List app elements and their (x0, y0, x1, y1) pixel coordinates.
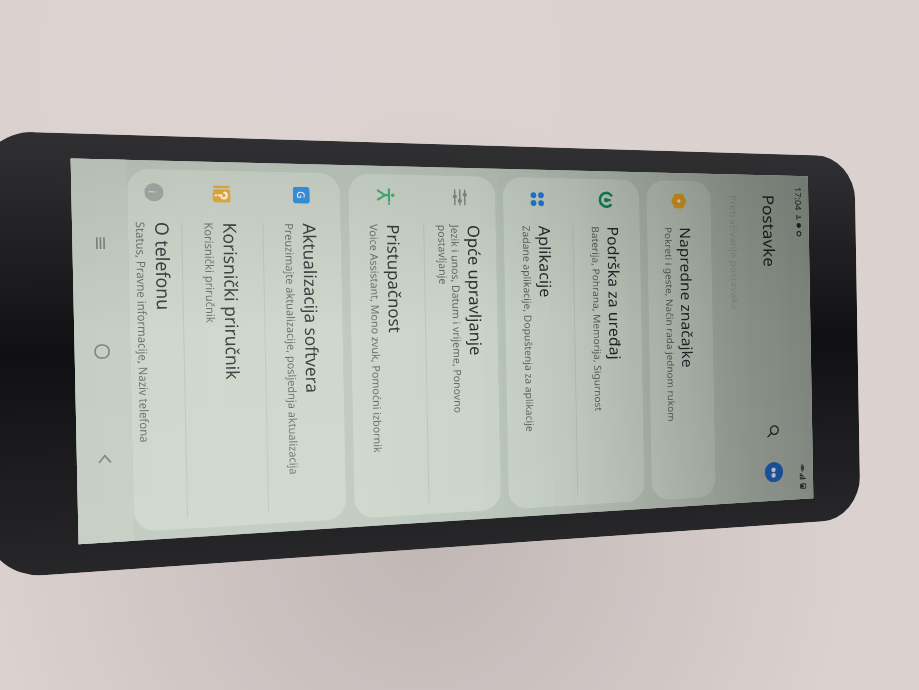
staticText: O telefonu (151, 222, 177, 311)
staticText: G (294, 191, 309, 199)
button[interactable]: i (127, 168, 187, 532)
staticText: 17:04 (792, 187, 804, 211)
button[interactable]: Korisnički priručnik (181, 170, 268, 529)
staticText: Pristupačnost (383, 224, 407, 333)
staticText: Zadane aplikacije, Dopuštenja za aplikac… (520, 225, 537, 433)
button[interactable]: Account (765, 461, 783, 483)
staticText: Napredne značajke (676, 227, 698, 368)
button[interactable]: Napredne značajke (646, 180, 716, 501)
staticText: Baterija, Pohrana, Memorija, Sigurnost (589, 226, 605, 411)
button[interactable]: Home (76, 327, 128, 376)
staticText: Aplikacije (535, 226, 557, 298)
staticText: Postavke (758, 194, 780, 268)
button[interactable]: Opće upravljanje (423, 175, 501, 514)
button[interactable]: Recents (74, 219, 126, 267)
staticText: Korisnički priručnik (219, 222, 246, 380)
staticText: Korisnički priručnik (201, 222, 219, 323)
staticText: Jezik i unos, Datum i vrijeme, Ponovno p… (435, 225, 466, 475)
staticText: Pretraživanje postavaka (727, 195, 742, 310)
button[interactable]: Aplikacije (503, 177, 577, 509)
staticText: Pokreti i geste, Način rada jednom rukom (662, 227, 678, 422)
button[interactable]: Pristupačnost (348, 173, 429, 519)
staticText: Status, Pravne informacije, Naziv telefo… (132, 222, 153, 443)
staticText: Podrška za uređaj (604, 226, 626, 361)
staticText: Aktualizacija softvera (299, 223, 325, 394)
button[interactable]: Search (762, 418, 784, 443)
staticText: Preuzimajte aktualizacije, posljednja ak… (282, 223, 301, 475)
staticText: Opće upravljanje (464, 225, 488, 356)
staticText: Voice Assistant, Mono zvuk, Pomoćni izbo… (366, 224, 385, 453)
button[interactable]: Podrška za uređaj (572, 178, 645, 505)
button[interactable]: G (262, 171, 346, 524)
staticText: i (146, 190, 160, 194)
button[interactable]: Back (79, 434, 131, 484)
